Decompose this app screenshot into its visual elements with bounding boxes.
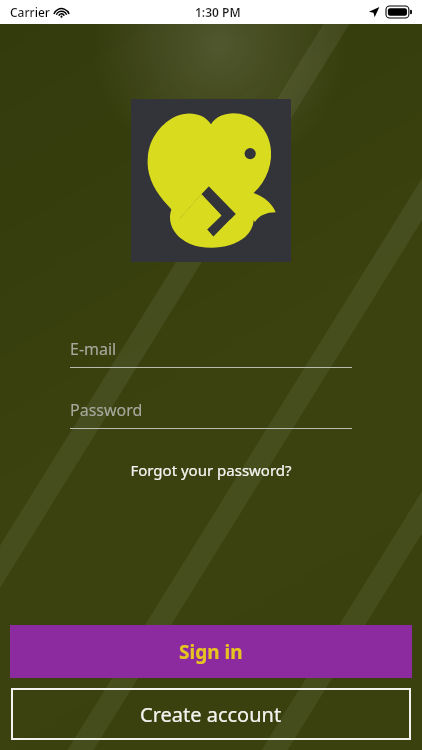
staticText: Create account [140, 701, 282, 728]
button[interactable]: Sign in [10, 625, 412, 678]
other: PocketBook logo [131, 99, 291, 262]
button[interactable]: Create account [11, 688, 411, 740]
button[interactable]: E-mail [70, 338, 352, 368]
staticText: Carrier [10, 4, 50, 20]
staticText: E-mail [70, 338, 117, 360]
button[interactable]: Forgot your password? [0, 460, 422, 480]
button[interactable]: Password [70, 399, 352, 429]
staticText: Password [70, 399, 143, 421]
staticText: Forgot your password? [130, 460, 292, 480]
staticText: 1:30 PM [195, 4, 241, 20]
staticText: Sign in [179, 639, 243, 665]
